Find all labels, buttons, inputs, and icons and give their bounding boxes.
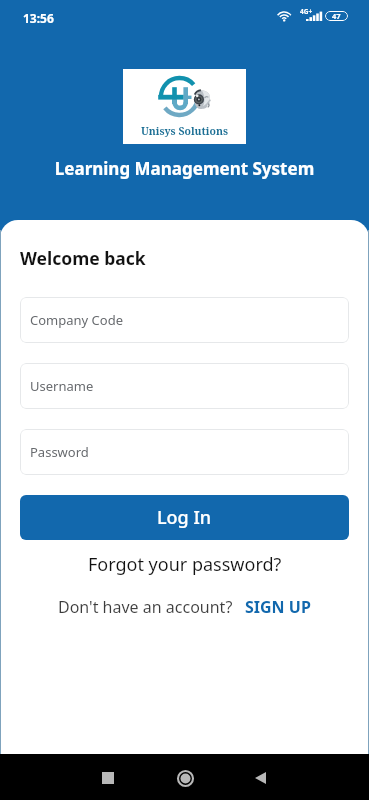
staticText: 47: [332, 11, 341, 21]
staticText: Welcome back: [20, 246, 146, 270]
staticText: Unisys Solutions: [123, 124, 246, 138]
staticText: 13:56: [23, 10, 54, 26]
staticText: 4G+: [300, 7, 313, 16]
button[interactable]: Password: [20, 429, 349, 475]
button[interactable]: Company Code: [20, 297, 349, 343]
staticText: Log In: [157, 505, 212, 530]
staticText: Company Code: [30, 311, 123, 329]
button[interactable]: Home: [155, 754, 215, 800]
staticText: Password: [30, 443, 89, 461]
staticText: Don't have an account?: [58, 596, 233, 618]
button[interactable]: Recent apps: [78, 754, 138, 800]
button[interactable]: Log In: [20, 495, 349, 540]
button[interactable]: Back: [230, 754, 290, 800]
button[interactable]: SIGN UP: [245, 596, 311, 618]
staticText: Learning Management System: [0, 157, 369, 180]
staticText: Username: [30, 377, 94, 395]
button[interactable]: Forgot your password?: [88, 552, 282, 577]
button[interactable]: Username: [20, 363, 349, 409]
